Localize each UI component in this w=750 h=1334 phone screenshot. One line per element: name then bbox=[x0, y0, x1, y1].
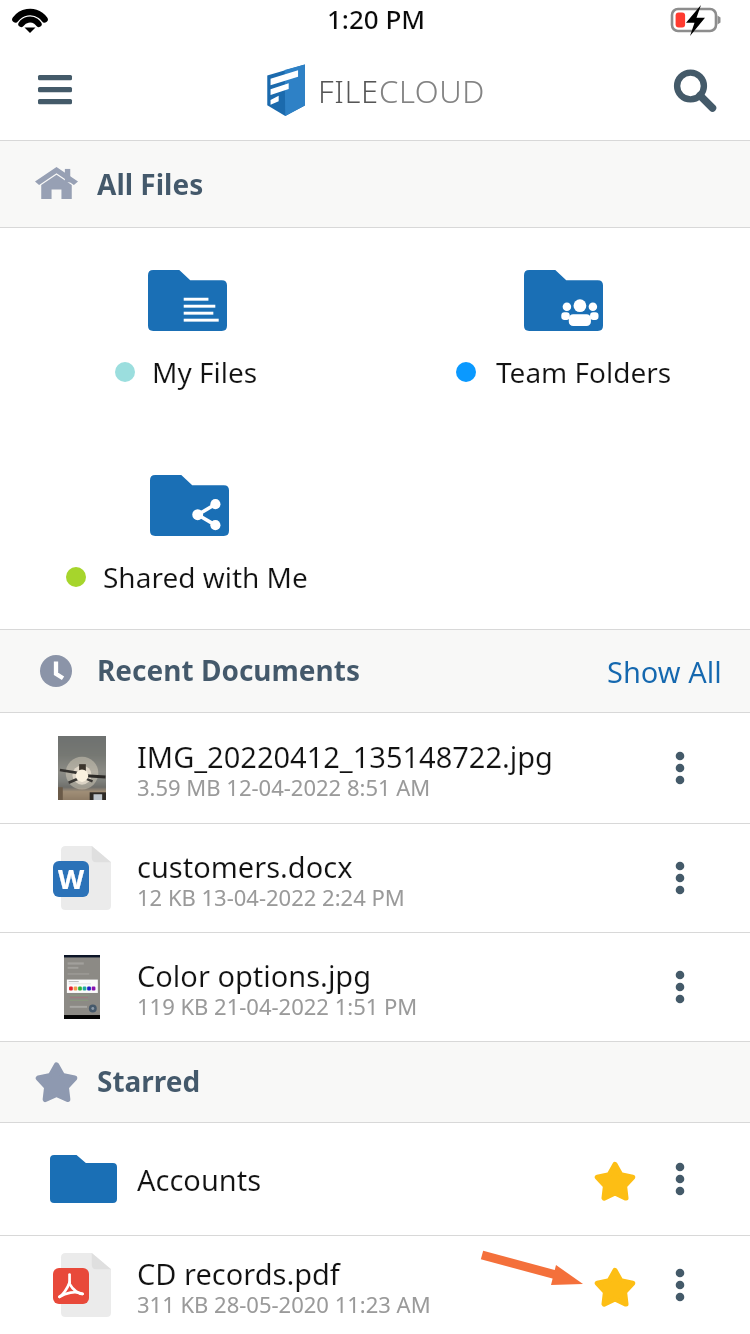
button[interactable]: More options bbox=[650, 1149, 710, 1209]
staticText: FILE bbox=[318, 70, 379, 112]
button[interactable]: Team Folders bbox=[448, 256, 680, 390]
button[interactable]: IMG_20220412_135148722.jpg bbox=[0, 713, 750, 823]
button[interactable]: More options bbox=[650, 1255, 710, 1315]
staticText: CLOUD bbox=[379, 70, 485, 112]
button[interactable]: Show All bbox=[597, 642, 732, 701]
button[interactable]: Accounts bbox=[0, 1123, 750, 1235]
button[interactable]: More options bbox=[650, 848, 710, 908]
staticText: All Files bbox=[97, 165, 204, 203]
button[interactable]: Search bbox=[650, 44, 750, 140]
staticText: 1:20 PM bbox=[327, 1, 426, 36]
button[interactable]: Shared with Me bbox=[60, 461, 320, 595]
staticText: Shared with Me bbox=[103, 558, 308, 596]
staticText: Color options.jpg bbox=[137, 956, 372, 995]
staticText: Accounts bbox=[137, 1160, 262, 1199]
button[interactable]: CD records.pdf bbox=[0, 1236, 750, 1334]
button[interactable]: My Files bbox=[108, 256, 268, 390]
staticText: Show All bbox=[607, 652, 722, 691]
staticText: CD records.pdf bbox=[137, 1254, 340, 1293]
button[interactable]: Color options.jpg bbox=[0, 933, 750, 1041]
staticText: 12 KB 13-04-2022 2:24 PM bbox=[137, 882, 405, 912]
button[interactable]: More options bbox=[650, 738, 710, 798]
staticText: customers.docx bbox=[137, 847, 353, 886]
button[interactable]: W bbox=[0, 824, 750, 932]
button[interactable]: Starred bbox=[0, 1042, 750, 1122]
staticText: 311 KB 28-05-2020 11:23 AM bbox=[137, 1289, 431, 1319]
button[interactable]: Menu bbox=[10, 44, 100, 140]
staticText: W bbox=[58, 861, 85, 896]
button[interactable]: More options bbox=[650, 957, 710, 1017]
button[interactable]: Starred bbox=[584, 1149, 644, 1209]
staticText: IMG_20220412_135148722.jpg bbox=[137, 737, 553, 776]
staticText: Starred bbox=[97, 1062, 201, 1100]
button[interactable]: All Files bbox=[0, 141, 750, 227]
staticText: 119 KB 21-04-2022 1:51 PM bbox=[137, 991, 418, 1021]
staticText: 3.59 MB 12-04-2022 8:51 AM bbox=[137, 772, 431, 802]
staticText: Recent Documents bbox=[97, 651, 360, 689]
staticText: My Files bbox=[152, 353, 258, 391]
button[interactable]: Recent Documents bbox=[0, 630, 750, 712]
button[interactable]: Starred bbox=[584, 1255, 644, 1315]
staticText: Team Folders bbox=[496, 353, 672, 391]
